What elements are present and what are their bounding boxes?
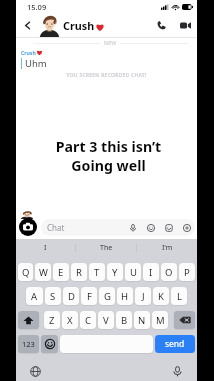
button[interactable]: 123 [18,335,39,353]
staticText: Uhm [25,57,47,70]
staticText: The [100,243,113,253]
staticText: Part 3 this isn’t Going well [20,137,197,175]
staticText: A [31,290,38,303]
button[interactable]: K [153,287,169,305]
staticText: B [121,314,128,327]
button[interactable]: Dictation [170,364,185,379]
button[interactable]: Video call [176,16,195,35]
staticText: Q [22,266,30,279]
staticText: N [138,314,146,327]
staticText: O [165,266,173,279]
staticText: V [103,314,109,327]
button[interactable]: Z [44,311,60,329]
staticText: W [39,266,48,279]
staticText: E [58,266,64,279]
staticText: P [184,266,190,279]
staticText: Z [49,314,55,327]
button[interactable]: C [80,311,96,329]
button[interactable]: X [62,311,78,329]
staticText: K [158,290,164,303]
staticText: I [44,243,47,253]
button[interactable]: Emoji [143,220,158,235]
staticText: U [130,266,137,279]
button[interactable]: O [161,263,177,281]
button[interactable]: A [26,287,43,305]
button[interactable]: F [81,287,97,305]
staticText: YOU SCREEN RECORDED CHAT! [16,72,197,79]
staticText: I [149,266,153,279]
staticText: S [50,290,56,303]
button[interactable]: Back [20,18,35,33]
button[interactable]: Backspace [174,311,195,329]
staticText: L [177,290,182,303]
staticText: Crush [21,49,36,56]
button[interactable]: U [125,263,141,281]
button[interactable]: G [99,287,115,305]
button[interactable]: I'm [137,239,197,256]
button[interactable]: Y [107,263,123,281]
staticText: Crush [63,18,95,33]
button[interactable]: L [171,287,187,305]
button[interactable]: The [76,239,136,256]
staticText: Y [112,266,118,279]
button[interactable]: P [179,263,195,281]
button[interactable]: Stickers [161,220,176,235]
button[interactable]: Call [152,16,171,35]
staticText: Chat [47,222,65,233]
staticText: T [94,266,100,279]
button[interactable]: H [117,287,133,305]
button[interactable]: Camera [19,218,37,236]
staticText: R [76,266,82,279]
button[interactable]: T [89,263,105,281]
button[interactable]: D [63,287,79,305]
button[interactable]: I [16,239,75,256]
staticText: 15.09 [27,2,47,12]
button[interactable]: send [155,335,195,353]
button[interactable]: Chat [41,219,195,236]
button[interactable]: Shift [18,311,39,329]
button[interactable]: V [98,311,114,329]
button[interactable]: J [135,287,151,305]
button[interactable]: Emoji keyboard [41,335,58,353]
staticText: I'm [162,243,173,253]
staticText: H [121,290,129,303]
button[interactable]: R [71,263,87,281]
button[interactable]: W [35,263,51,281]
staticText: X [67,314,73,327]
button[interactable]: E [53,263,69,281]
staticText: F [87,290,92,303]
button[interactable] [60,335,153,353]
staticText: send [165,338,185,350]
staticText: J [142,290,145,303]
staticText: D [68,290,75,303]
staticText: M [156,314,165,327]
staticText: NEW [104,40,117,47]
button[interactable]: Voice message [125,220,140,235]
staticText: 123 [22,339,35,349]
button[interactable]: S [45,287,61,305]
staticText: C [85,314,92,327]
button[interactable]: N [134,311,150,329]
button[interactable]: M [152,311,168,329]
button[interactable]: More options [179,220,194,235]
button[interactable]: I [143,263,159,281]
staticText: G [104,290,111,303]
button[interactable]: Q [18,263,33,281]
button[interactable]: B [116,311,132,329]
button[interactable]: Change keyboard [28,364,43,379]
